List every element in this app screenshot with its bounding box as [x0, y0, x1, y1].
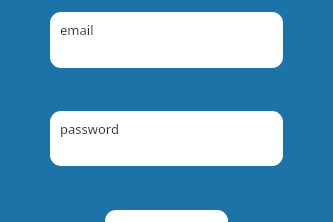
button[interactable]: password	[50, 111, 283, 166]
staticText: email	[60, 21, 94, 39]
button[interactable]: Sign in	[105, 210, 228, 222]
button[interactable]: email	[50, 12, 283, 68]
staticText: password	[60, 120, 119, 138]
